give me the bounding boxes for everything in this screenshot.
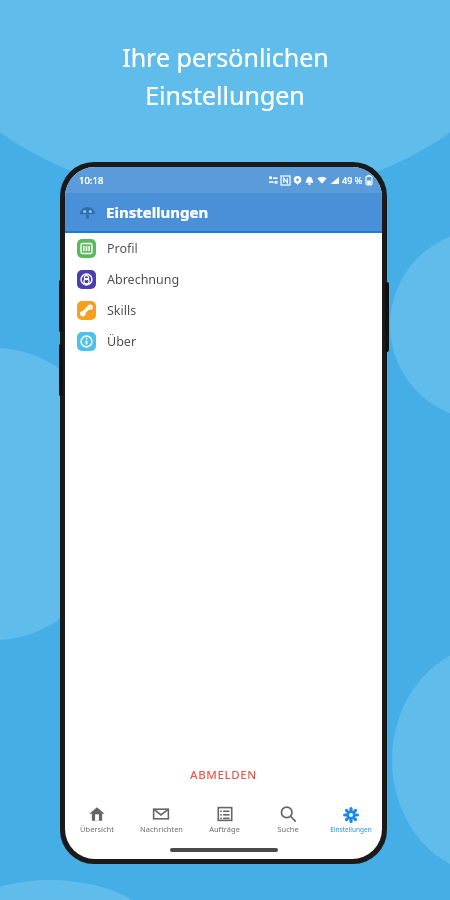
button[interactable]: Übersicht (65, 799, 129, 841)
staticText: Über (107, 333, 137, 350)
button[interactable]: Skills (65, 295, 382, 326)
staticText: Abrechnung (107, 271, 180, 288)
button[interactable]: Aufträge (193, 799, 256, 841)
staticText: Einstellungen (145, 78, 305, 112)
staticText: Übersicht (80, 824, 114, 834)
staticText: Einstellungen (106, 202, 209, 222)
button[interactable]: ABMELDEN (65, 759, 382, 791)
staticText: ABMELDEN (190, 767, 257, 783)
button[interactable]: Einstellungen (319, 799, 382, 841)
staticText: Aufträge (209, 824, 240, 834)
staticText: 10:18 (79, 174, 104, 187)
staticText: Ihre persönlichen (122, 40, 329, 74)
staticText: Einstellungen (330, 825, 372, 834)
button[interactable]: Über (65, 326, 382, 357)
staticText: Profil (107, 240, 138, 257)
staticText: Skills (107, 302, 137, 319)
button[interactable]: Profil (65, 233, 382, 264)
staticText: 49 % (342, 174, 363, 186)
button[interactable]: Nachrichten (129, 799, 193, 841)
staticText: Nachrichten (140, 824, 183, 834)
button[interactable]: Abrechnung (65, 264, 382, 295)
staticText: Suche (277, 824, 299, 834)
button[interactable]: Suche (256, 799, 319, 841)
